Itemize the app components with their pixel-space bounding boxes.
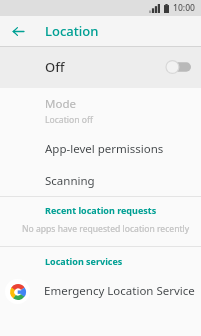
staticText: Location off: [45, 114, 93, 126]
staticText: Mode: [45, 96, 76, 112]
button[interactable]: Back: [8, 21, 29, 42]
button[interactable]: Emergency Location Service: [0, 274, 201, 308]
button[interactable]: App-level permissions: [0, 133, 201, 165]
staticText: Location: [45, 22, 99, 40]
staticText: Off: [45, 58, 65, 76]
staticText: Location services: [45, 255, 123, 267]
staticText: 10:00: [173, 2, 196, 14]
staticText: Scanning: [45, 173, 95, 189]
staticText: Emergency Location Service: [44, 283, 195, 299]
button[interactable]: Mode: [0, 88, 201, 133]
staticText: Recent location requests: [45, 204, 157, 216]
staticText: App-level permissions: [45, 141, 164, 157]
button[interactable]: Off: [0, 46, 201, 88]
staticText: No apps have requested location recently: [22, 223, 190, 235]
button[interactable]: Scanning: [0, 165, 201, 196]
